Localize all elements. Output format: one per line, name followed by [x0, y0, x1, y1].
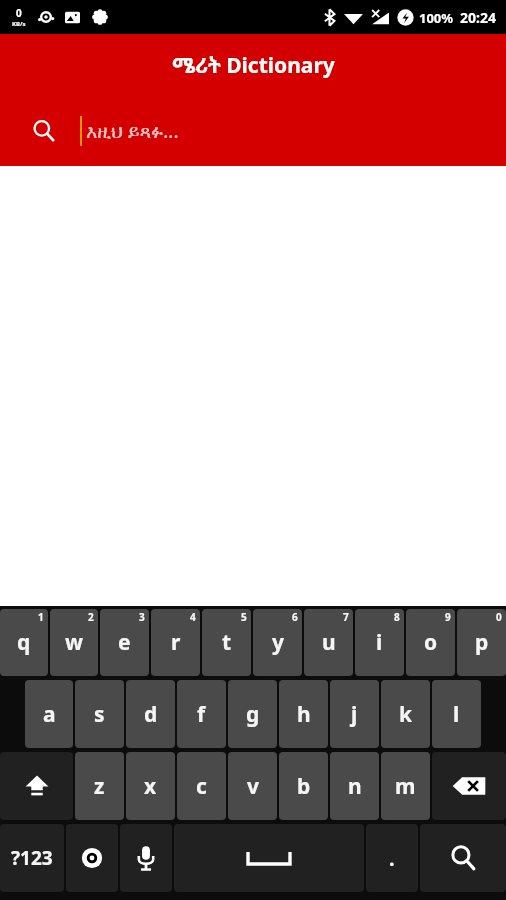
button[interactable]: d [126, 680, 175, 748]
staticText: s [94, 700, 105, 729]
staticText: g [246, 700, 260, 729]
staticText: 3 [139, 610, 145, 624]
button[interactable]: l [432, 680, 481, 748]
staticText: b [297, 772, 311, 801]
staticText: v [247, 772, 259, 801]
button[interactable]: g [228, 680, 277, 748]
staticText: m [395, 772, 416, 801]
staticText: c [196, 772, 207, 801]
button[interactable]: 2 [50, 609, 98, 676]
button[interactable]: b [279, 752, 328, 820]
button[interactable]: c [177, 752, 226, 820]
staticText: 8 [394, 610, 400, 624]
staticText: እዚህ ይጻፉ... [86, 118, 179, 144]
staticText: j [351, 700, 358, 729]
staticText: y [272, 628, 284, 657]
button[interactable]: 9 [406, 609, 455, 676]
staticText: ?123 [11, 845, 53, 871]
button[interactable]: 6 [253, 609, 302, 676]
staticText: h [297, 700, 311, 729]
staticText: x [144, 772, 157, 801]
staticText: n [348, 772, 362, 801]
staticText: 9 [445, 610, 451, 624]
staticText: 100% [419, 9, 454, 27]
staticText: KB/s [12, 20, 26, 28]
staticText: r [171, 628, 181, 657]
button[interactable]: . [366, 824, 418, 892]
button[interactable]: Shift [0, 752, 73, 820]
staticText: 4 [190, 610, 196, 624]
staticText: 6 [292, 610, 298, 624]
button[interactable]: Space [174, 824, 364, 892]
staticText: 7 [343, 610, 349, 624]
button[interactable]: 1 [0, 609, 48, 676]
button[interactable]: Voice input [120, 824, 172, 892]
staticText: ሜሪት Dictionary [172, 51, 335, 80]
button[interactable]: k [381, 680, 430, 748]
button[interactable]: a [25, 680, 73, 748]
staticText: a [43, 700, 56, 729]
staticText: u [322, 628, 336, 657]
button[interactable]: f [177, 680, 226, 748]
staticText: . [389, 845, 395, 872]
staticText: w [65, 628, 83, 657]
button[interactable]: 8 [355, 609, 404, 676]
button[interactable]: x [126, 752, 175, 820]
staticText: t [222, 628, 232, 657]
button[interactable]: m [381, 752, 430, 820]
staticText: l [453, 700, 460, 729]
button[interactable]: j [330, 680, 379, 748]
staticText: z [94, 772, 105, 801]
staticText: d [144, 700, 158, 729]
staticText: 0 [16, 6, 22, 20]
button[interactable]: s [75, 680, 124, 748]
staticText: 5 [241, 610, 247, 624]
button[interactable]: z [75, 752, 124, 820]
button[interactable]: n [330, 752, 379, 820]
button[interactable]: h [279, 680, 328, 748]
staticText: i [376, 628, 383, 657]
button[interactable]: Backspace [432, 752, 506, 820]
staticText: 20:24 [460, 8, 496, 27]
staticText: q [17, 628, 31, 657]
button[interactable]: Emoji [66, 824, 118, 892]
staticText: k [399, 700, 413, 729]
button[interactable]: 5 [202, 609, 251, 676]
staticText: p [475, 628, 489, 657]
button[interactable]: 7 [304, 609, 353, 676]
button[interactable]: 4 [151, 609, 200, 676]
button[interactable]: Search [24, 111, 64, 151]
staticText: 1 [38, 610, 44, 624]
button[interactable]: v [228, 752, 277, 820]
staticText: o [424, 628, 438, 657]
button[interactable]: Search [420, 824, 506, 892]
button[interactable]: ?123 [0, 824, 64, 892]
staticText: e [118, 628, 131, 657]
staticText: 0 [496, 610, 502, 624]
button[interactable]: 0 [457, 609, 506, 676]
button[interactable]: 3 [100, 609, 149, 676]
staticText: 2 [88, 610, 94, 624]
staticText: f [197, 700, 206, 729]
